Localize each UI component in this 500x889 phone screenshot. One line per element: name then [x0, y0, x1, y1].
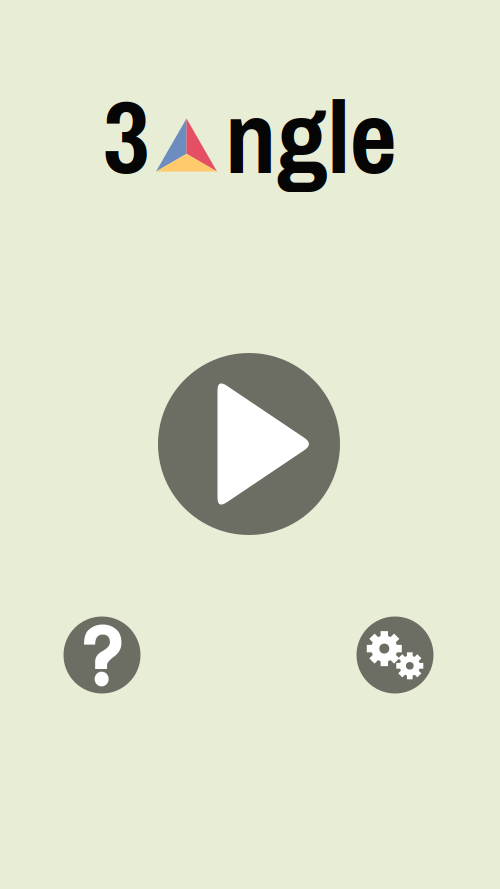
staticText: 3 [103, 67, 150, 205]
staticText: ngle [225, 67, 397, 205]
button[interactable]: Help [63, 616, 140, 693]
button[interactable]: Play [158, 353, 340, 535]
button[interactable]: Settings [356, 616, 433, 693]
